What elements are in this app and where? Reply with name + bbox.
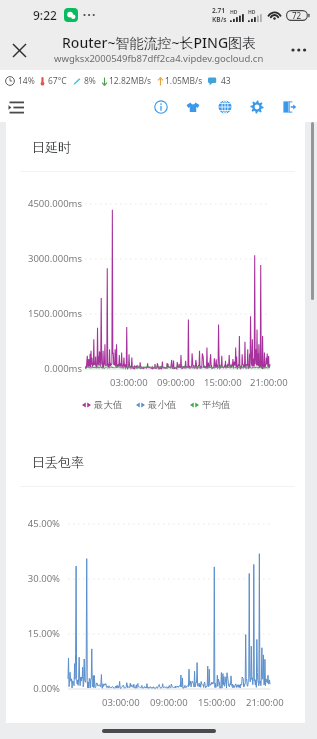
staticText: 09:00:00	[157, 376, 195, 389]
staticText: 3000.000ms	[27, 252, 82, 265]
staticText: 43	[221, 75, 231, 87]
button[interactable]: 最小值	[136, 399, 177, 411]
staticText: 12.82MB/s	[109, 75, 152, 87]
staticText: 15.00%	[27, 627, 60, 640]
staticText: 日丢包率	[32, 454, 84, 470]
staticText: HD	[248, 9, 256, 16]
button[interactable]: Info	[151, 97, 171, 117]
staticText: 8%	[84, 75, 96, 87]
button[interactable]: Settings	[247, 97, 267, 117]
staticText: 21:00:00	[250, 376, 288, 389]
staticText: 2.71	[212, 6, 225, 15]
staticText: 72	[292, 10, 302, 21]
staticText: 平均值	[202, 399, 231, 411]
staticText: wwgksx2000549fb87dff2ca4.vipdev.gocloud.…	[54, 52, 264, 65]
staticText: 15:00:00	[198, 696, 236, 709]
staticText: Router~智能流控~长PING图表	[62, 33, 257, 52]
staticText: 45.00%	[27, 517, 60, 530]
button[interactable]: 平均值	[190, 399, 231, 411]
staticText: 03:00:00	[102, 696, 140, 709]
button[interactable]: Language	[215, 97, 235, 117]
staticText: 09:00:00	[150, 696, 188, 709]
staticText: HD	[230, 9, 238, 16]
staticText: 最小值	[148, 399, 177, 411]
staticText: 0.000ms	[44, 362, 82, 375]
staticText: 4500.000ms	[27, 197, 82, 210]
button[interactable]: Menu	[4, 95, 28, 119]
staticText: 0.00%	[33, 682, 60, 695]
staticText: 30.00%	[27, 572, 60, 585]
staticText: 1.05MB/s	[165, 75, 203, 87]
staticText: 1500.000ms	[27, 307, 82, 320]
button[interactable]: Theme	[183, 97, 203, 117]
staticText: 14%	[18, 75, 35, 87]
button[interactable]: Logout	[279, 97, 299, 117]
button[interactable]: 最大值	[82, 399, 123, 411]
staticText: 最大值	[94, 399, 123, 411]
staticText: KB/s	[212, 15, 227, 24]
staticText: 日延时	[32, 139, 71, 155]
staticText: 21:00:00	[246, 696, 284, 709]
staticText: 03:00:00	[110, 376, 148, 389]
button[interactable]: More options	[285, 36, 313, 64]
button[interactable]: Close	[5, 36, 33, 64]
staticText: 67°C	[48, 75, 67, 87]
staticText: 15:00:00	[204, 376, 242, 389]
staticText: 9:22	[33, 7, 57, 23]
